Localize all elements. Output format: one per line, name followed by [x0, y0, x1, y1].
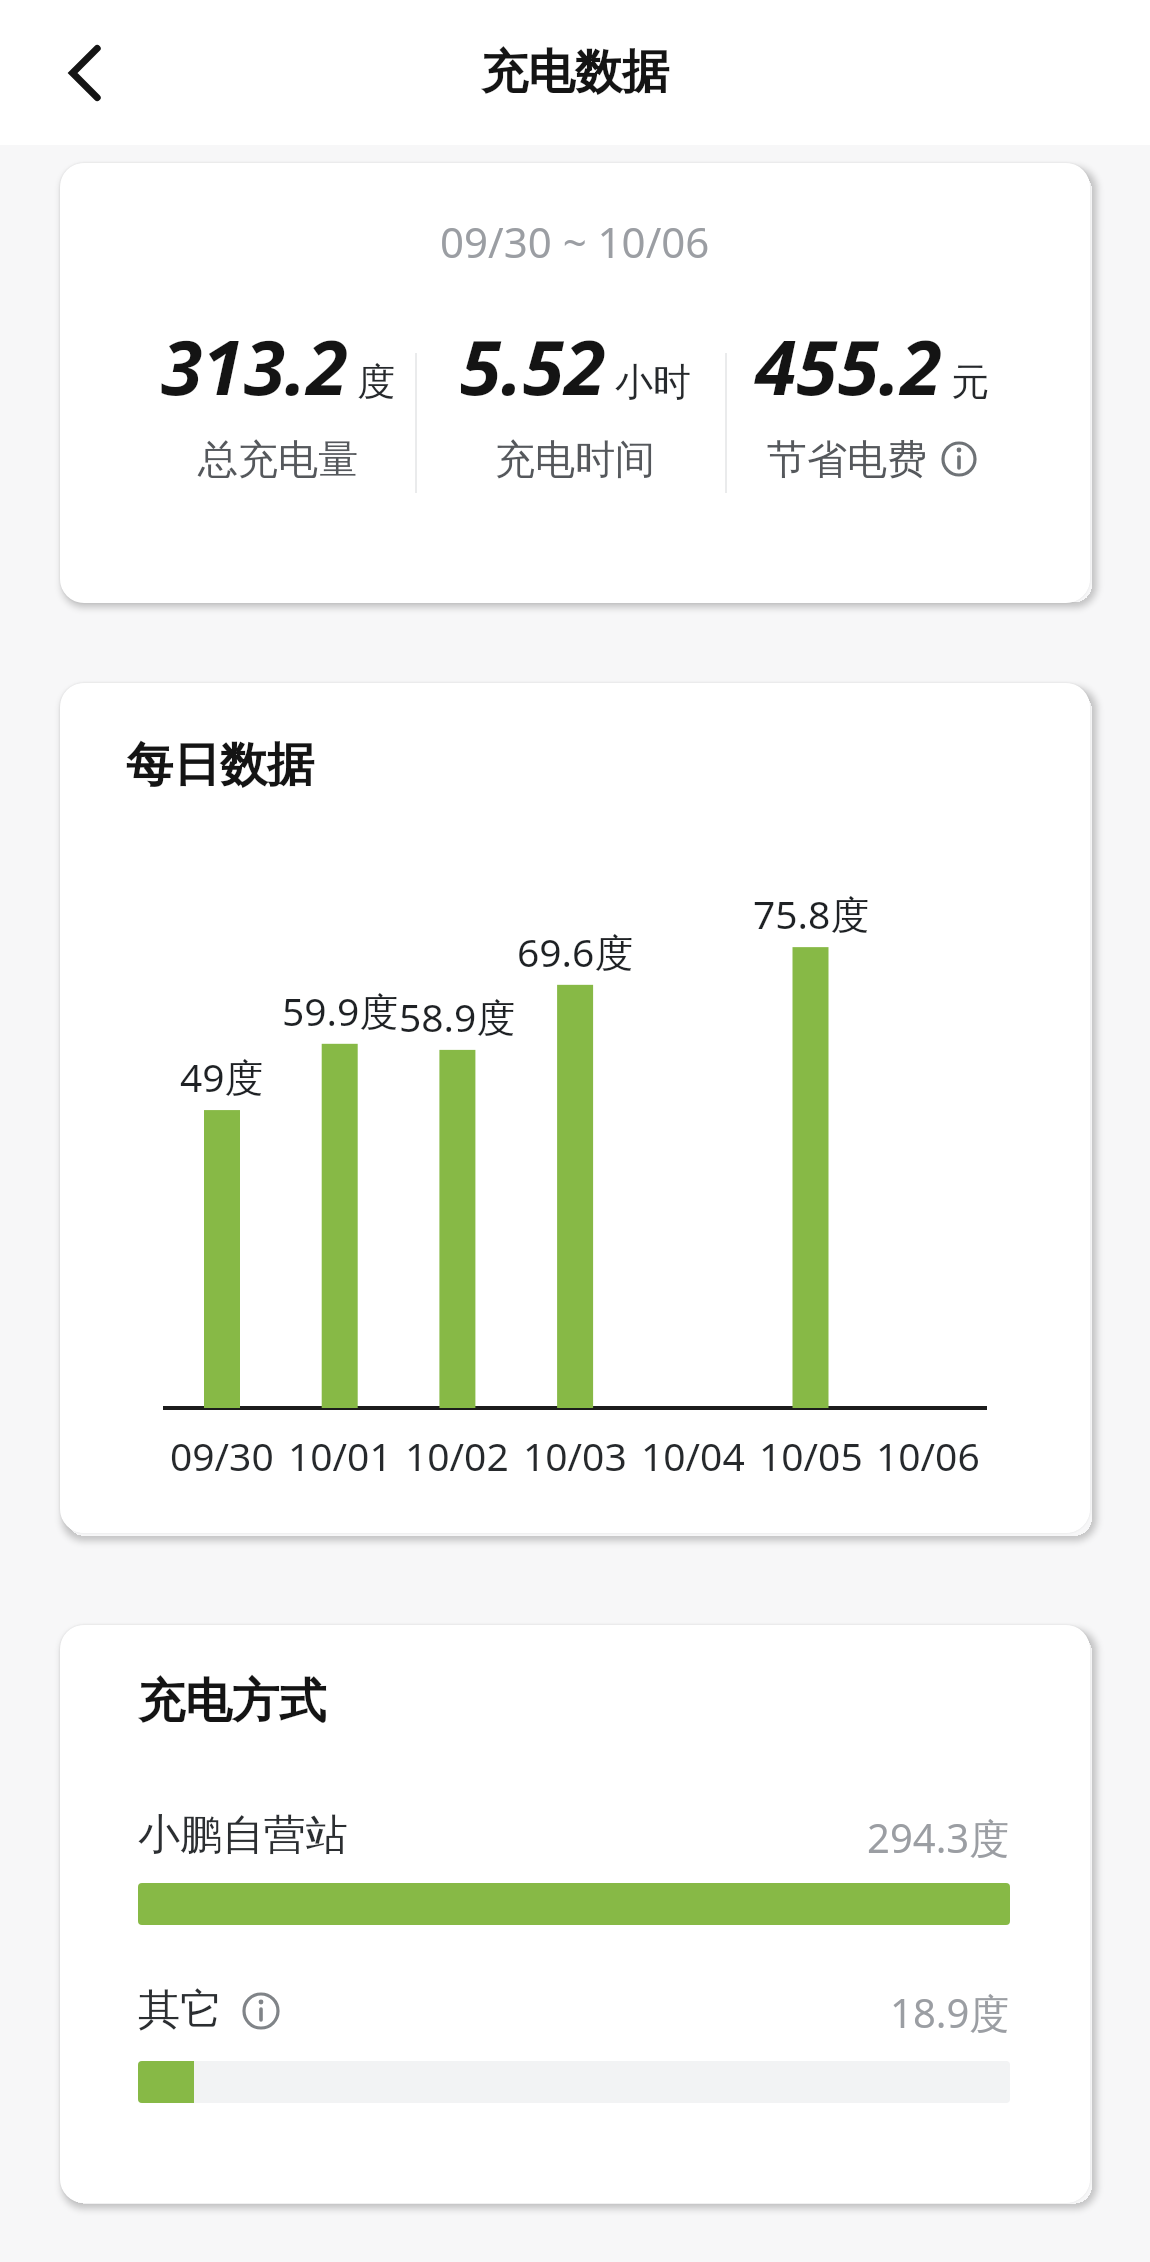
staticText: 10/06: [876, 1429, 980, 1482]
staticText: 313.2 度: [161, 315, 396, 417]
staticText: 10/05: [759, 1429, 863, 1482]
staticText: 10/01: [288, 1429, 392, 1482]
staticText: 10/04: [641, 1429, 745, 1482]
button[interactable]: [941, 441, 977, 477]
staticText: 总充电量: [198, 434, 358, 484]
staticText: 10/02: [405, 1429, 509, 1482]
staticText: 69.6度: [517, 925, 634, 978]
staticText: 10/03: [523, 1429, 627, 1482]
staticText: 充电数据: [481, 43, 669, 102]
button[interactable]: [242, 1992, 280, 2030]
staticText: 455.2 元: [755, 315, 990, 417]
staticText: 其它: [138, 1984, 222, 2037]
staticText: 09/30 ~ 10/06: [440, 213, 710, 270]
staticText: 18.9度: [890, 1985, 1010, 2040]
staticText: 充电方式: [138, 1672, 326, 1731]
staticText: 5.52 小时: [460, 315, 691, 417]
staticText: 小鹏自营站: [138, 1809, 348, 1862]
staticText: 节省电费: [767, 434, 927, 484]
staticText: 294.3度: [867, 1810, 1010, 1865]
staticText: 58.9度: [399, 990, 516, 1043]
staticText: 75.8度: [753, 887, 870, 940]
staticText: 充电时间: [495, 434, 655, 484]
button[interactable]: [58, 45, 114, 101]
staticText: 每日数据: [126, 736, 314, 795]
staticText: 09/30: [170, 1429, 274, 1482]
staticText: 59.9度: [282, 984, 399, 1037]
staticText: 49度: [180, 1050, 264, 1103]
